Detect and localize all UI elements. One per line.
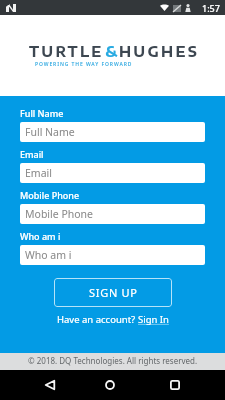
button[interactable]: Who am i [20, 245, 205, 265]
button[interactable]: Have an account? [57, 313, 169, 326]
staticText: Full Name [20, 107, 64, 119]
staticText: SIGN UP [89, 285, 138, 300]
button[interactable]: Email [20, 163, 205, 183]
staticText: Who am i [20, 230, 61, 242]
staticText: Sign In [138, 313, 169, 326]
staticText: HUGHES [119, 43, 200, 61]
staticText: Email [25, 166, 52, 180]
staticText: POWERING THE WAY FORWARD [35, 61, 133, 68]
staticText: Who am i [25, 248, 72, 262]
staticText: Full Name [25, 125, 75, 139]
staticText: Mobile Phone [20, 189, 80, 201]
button[interactable]: Home [95, 370, 125, 400]
staticText: & [105, 43, 118, 61]
button[interactable]: Mobile Phone [20, 204, 205, 224]
button[interactable]: Back [35, 370, 65, 400]
staticText: Email [20, 148, 44, 160]
button[interactable]: Full Name [20, 122, 205, 142]
staticText: 1:57 [202, 2, 220, 14]
staticText: TURTLE [29, 43, 104, 61]
staticText: Mobile Phone [25, 207, 94, 221]
button[interactable]: Recents [160, 370, 190, 400]
staticText: © 2018. DQ Technologies. All rights rese… [28, 355, 198, 366]
button[interactable]: SIGN UP [54, 278, 172, 307]
staticText: Have an account? [57, 313, 138, 326]
